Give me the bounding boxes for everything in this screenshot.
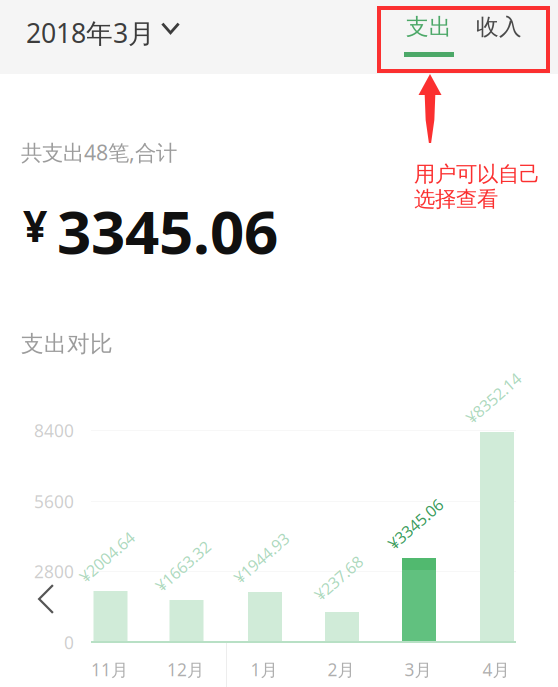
staticText: 2018年3月 — [26, 15, 155, 50]
staticText: 3345.06 — [57, 191, 278, 271]
staticText: 4月 — [482, 658, 509, 681]
staticText: ¥ — [23, 197, 47, 254]
staticText: 12月 — [167, 658, 204, 681]
staticText: ¥8352.14 — [460, 387, 527, 409]
staticText: 11月 — [91, 658, 128, 681]
staticText: ¥1663.32 — [149, 555, 216, 577]
staticText: 2800 — [34, 560, 74, 583]
staticText: 5600 — [34, 490, 74, 513]
staticText: 支出对比 — [21, 330, 113, 358]
button[interactable]: 支出 — [404, 13, 454, 57]
staticText: 2月 — [327, 658, 354, 681]
staticText: 支出 — [406, 13, 452, 41]
staticText: 共支出48笔,合计 — [21, 138, 177, 166]
staticText: 0 — [64, 631, 74, 654]
staticText: 用户可以自己 — [414, 161, 540, 187]
staticText: 选择查看 — [414, 186, 498, 212]
staticText: 8400 — [34, 419, 74, 442]
staticText: 1月 — [250, 658, 277, 681]
staticText: ¥2004.64 — [73, 546, 140, 568]
staticText: ¥237.68 — [309, 567, 367, 589]
button[interactable]: Previous months — [32, 578, 60, 620]
staticText: 收入 — [476, 13, 522, 41]
button[interactable]: 收入 — [474, 13, 524, 57]
staticText: ¥1944.93 — [228, 547, 295, 569]
staticText: 3月 — [404, 658, 431, 681]
staticText: ¥3345.06 — [382, 513, 449, 535]
button[interactable]: 2018年3月 — [22, 5, 184, 60]
